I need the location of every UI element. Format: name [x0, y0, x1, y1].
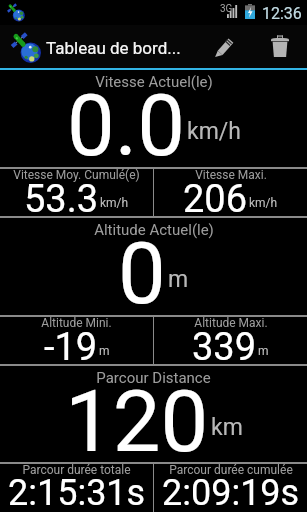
staticText: Vitesse Actuel(le) [95, 73, 213, 91]
button[interactable]: Parcour Distance [0, 366, 307, 462]
staticText: Altitude Mini. [41, 316, 112, 330]
staticText: Parcour durée totale [22, 463, 131, 477]
button[interactable]: Altitude Actuel(le) [0, 218, 307, 315]
staticText: 0.0 [67, 76, 185, 173]
staticText: km/h [249, 196, 278, 210]
staticText: m [99, 344, 110, 358]
staticText: km/h [187, 118, 241, 145]
button[interactable]: Edit [201, 25, 249, 68]
button[interactable]: Vitesse Actuel(le) [0, 70, 307, 167]
staticText: Tableau de bord... [46, 38, 181, 58]
staticText: Altitude Actuel(le) [94, 221, 214, 239]
staticText: m [258, 344, 269, 358]
button[interactable]: Altitude Mini. [0, 317, 153, 364]
staticText: 2:15:31s [8, 472, 146, 512]
staticText: Parcour Distance [96, 369, 211, 387]
staticText: 53.3 [24, 177, 99, 222]
staticText: 2:09:19s [162, 472, 300, 512]
button[interactable]: Vitesse Maxi. [154, 169, 307, 216]
staticText: Parcour durée cumulée [169, 463, 293, 477]
button[interactable]: Vitesse Moy. Cumulé(e) [0, 169, 153, 216]
staticText: Vitesse Maxi. [195, 168, 267, 182]
staticText: 3G [220, 3, 233, 15]
button[interactable]: Parcour durée totale [0, 464, 153, 512]
staticText: 206 [183, 177, 248, 222]
button[interactable]: Altitude Maxi. [154, 317, 307, 364]
staticText: 120 [65, 372, 209, 468]
staticText: km [211, 414, 243, 441]
staticText: 0 [118, 224, 166, 321]
button[interactable]: Parcour durée cumulée [154, 464, 307, 512]
staticText: 339 [192, 325, 257, 370]
staticText: 12:36 [262, 4, 302, 23]
staticText: Vitesse Moy. Cumulé(e) [13, 168, 140, 182]
button[interactable]: Delete [256, 25, 304, 68]
staticText: -19 [44, 325, 98, 370]
staticText: km/h [100, 196, 129, 210]
staticText: m [168, 266, 189, 293]
staticText: Altitude Maxi. [194, 316, 268, 330]
